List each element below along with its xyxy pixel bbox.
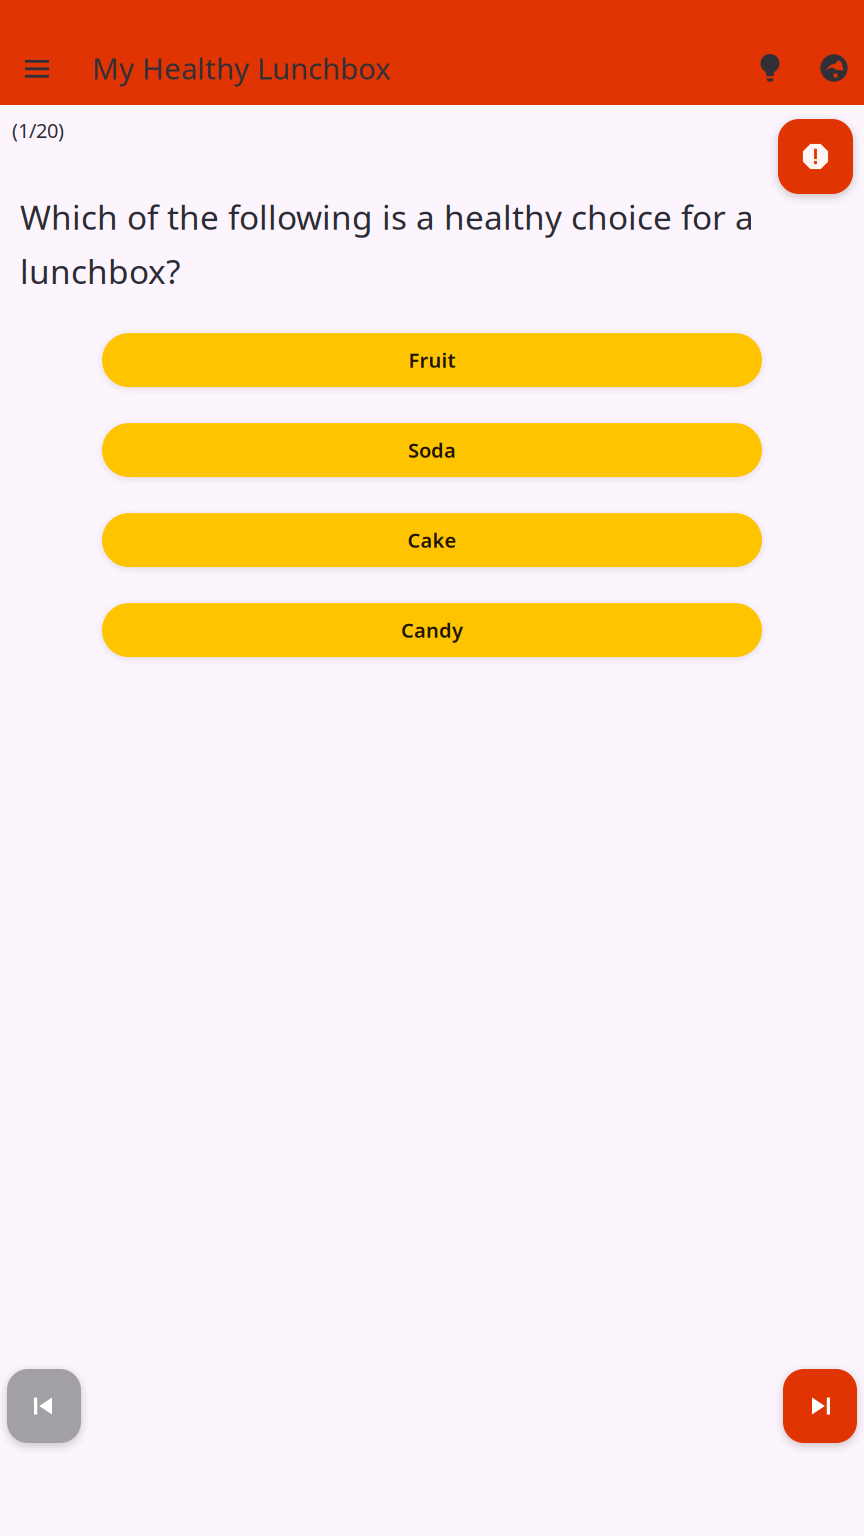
- staticText: (1/20): [12, 117, 64, 144]
- staticText: Candy: [401, 617, 463, 643]
- staticText: Cake: [407, 527, 456, 553]
- staticText: Soda: [408, 437, 456, 463]
- button[interactable]: Soda: [102, 423, 762, 477]
- button[interactable]: Language: [810, 44, 858, 92]
- button[interactable]: Next question: [783, 1369, 857, 1443]
- button[interactable]: Hint: [746, 44, 794, 92]
- button[interactable]: Fruit: [102, 333, 762, 387]
- button[interactable]: Report a problem: [778, 119, 853, 194]
- button[interactable]: Cake: [102, 513, 762, 567]
- button[interactable]: Previous question: [7, 1369, 81, 1443]
- button[interactable]: Candy: [102, 603, 762, 657]
- staticText: lunchbox?: [20, 249, 180, 293]
- staticText: Which of the following is a healthy choi…: [20, 195, 754, 239]
- button[interactable]: Menu: [13, 44, 61, 92]
- staticText: Fruit: [408, 347, 455, 373]
- staticText: My Healthy Lunchbox: [92, 48, 391, 87]
